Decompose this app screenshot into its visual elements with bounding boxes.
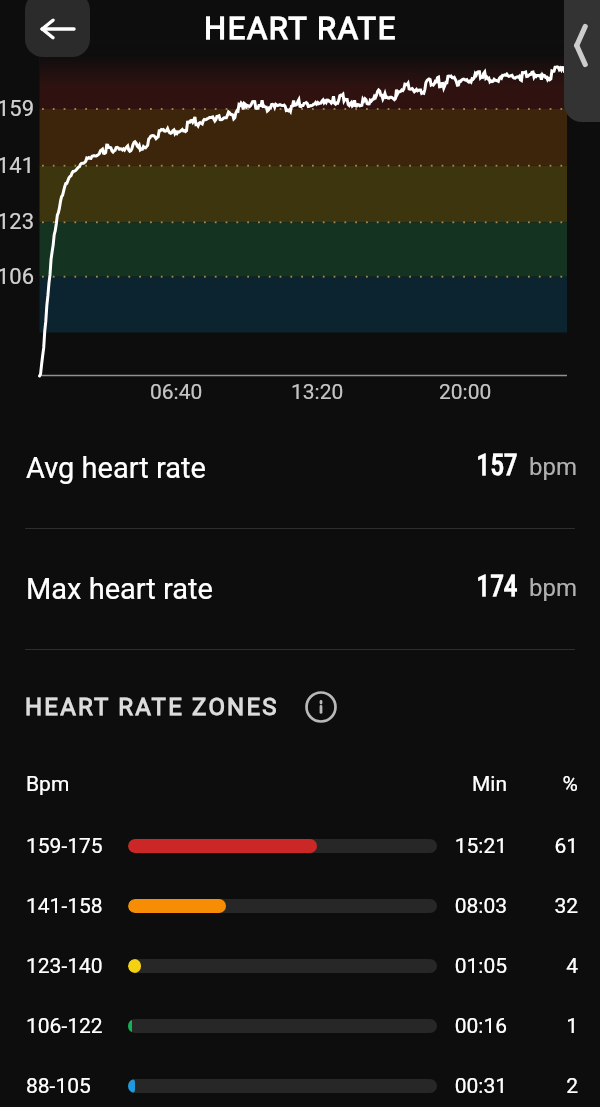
staticText: 174 [477, 568, 518, 603]
staticText: 00:16 [380, 1014, 507, 1039]
staticText: 88-105 [26, 1074, 91, 1099]
staticText: 123-140 [26, 954, 103, 979]
staticText: 00:31 [380, 1074, 507, 1099]
staticText: 2 [538, 1074, 578, 1099]
staticText: % [538, 772, 578, 797]
staticText: Bpm [26, 772, 70, 797]
staticText: HEART RATE [204, 10, 397, 46]
button[interactable]: Avg heart rate [0, 408, 600, 528]
staticText: HEART RATE ZONES [25, 693, 279, 721]
button[interactable]: Zone info [297, 684, 345, 729]
button[interactable]: Open side panel [564, 0, 600, 122]
staticText: 32 [538, 894, 578, 919]
button[interactable]: Back [25, 0, 90, 57]
staticText: 141-158 [26, 894, 103, 919]
staticText: 13:20 [291, 380, 344, 405]
staticText: 123 [0, 209, 35, 235]
staticText: 159 [0, 96, 35, 122]
staticText: 141 [0, 153, 35, 179]
button[interactable]: 88-105 [0, 1056, 600, 1107]
button[interactable]: 123-140 [0, 936, 600, 996]
staticText: Min [380, 772, 507, 797]
staticText: Max heart rate [26, 572, 213, 606]
staticText: 159-175 [26, 834, 103, 859]
staticText: 4 [538, 954, 578, 979]
staticText: bpm [529, 453, 577, 481]
staticText: 15:21 [380, 834, 507, 859]
staticText: 157 [477, 447, 518, 482]
staticText: 1 [538, 1014, 578, 1039]
staticText: 106-122 [26, 1014, 103, 1039]
button[interactable]: 141-158 [0, 876, 600, 936]
staticText: 61 [538, 834, 578, 859]
staticText: 20:00 [439, 380, 492, 405]
staticText: Avg heart rate [26, 451, 206, 485]
staticText: 08:03 [380, 894, 507, 919]
staticText: 106 [0, 264, 35, 290]
staticText: 01:05 [380, 954, 507, 979]
staticText: 06:40 [150, 380, 203, 405]
button[interactable]: 159-175 [0, 816, 600, 876]
button[interactable]: 106-122 [0, 996, 600, 1056]
staticText: bpm [529, 574, 577, 602]
button[interactable]: Max heart rate [0, 529, 600, 649]
